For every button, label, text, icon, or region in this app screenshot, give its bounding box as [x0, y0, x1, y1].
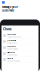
- staticText: Order shipped: [7, 48, 18, 50]
- staticText: Sam Patel: [7, 45, 15, 47]
- button[interactable]: Avery Chen: [1, 33, 38, 39]
- staticText: See you then: [7, 54, 17, 56]
- staticText: Avery Chen: [7, 33, 16, 35]
- staticText: Is it in stock?: [7, 42, 17, 44]
- staticText: Jordan Ruiz: [7, 39, 16, 41]
- staticText: Message your: [2, 5, 18, 9]
- staticText: Chats: [3, 27, 12, 31]
- staticText: Perfect, thanks: [7, 60, 20, 62]
- staticText: Noor Ali: [7, 57, 12, 59]
- staticText: Thanks so much!: [7, 36, 20, 38]
- button[interactable]: Riley Moss: [1, 51, 38, 57]
- button[interactable]: Jordan Ruiz: [1, 39, 38, 45]
- staticText: Riley Moss: [7, 51, 15, 53]
- staticText: customers: [2, 9, 14, 12]
- button[interactable]: Sam Patel: [1, 45, 38, 51]
- button[interactable]: Noor Ali: [1, 57, 38, 63]
